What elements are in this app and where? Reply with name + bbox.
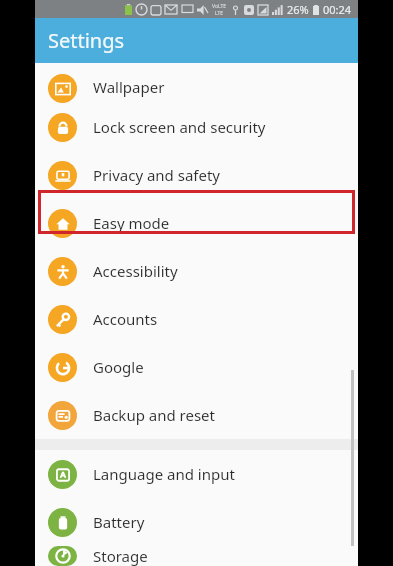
button[interactable]: Lock screen and security [35,103,358,151]
staticText: Settings [48,27,125,54]
button[interactable]: Wallpaper [35,63,358,103]
staticText: Storage [93,546,148,566]
button[interactable]: Accounts [35,295,358,343]
staticText: 26% [287,2,309,17]
staticText: Language and input [93,464,235,484]
button[interactable]: Language and input [35,450,358,498]
staticText: Backup and reset [93,405,215,425]
staticText: VoLTE [212,3,227,10]
button[interactable]: Google [35,343,358,391]
button[interactable]: Storage [35,546,358,566]
button[interactable]: Easy mode [35,199,358,247]
staticText: Lock screen and security [93,117,266,137]
staticText: Accessibility [93,261,178,281]
staticText: Wallpaper [93,77,165,97]
staticText: 00:24 [323,2,352,17]
button[interactable]: Privacy and safety [35,151,358,199]
staticText: Accounts [93,309,158,329]
staticText: Battery [93,512,145,532]
button[interactable]: Battery [35,498,358,546]
staticText: Google [93,357,144,377]
staticText: Easy mode [93,213,170,233]
button[interactable]: Accessibility [35,247,358,295]
staticText: LTE [215,10,224,17]
staticText: Privacy and safety [93,165,221,185]
button[interactable]: Backup and reset [35,391,358,439]
